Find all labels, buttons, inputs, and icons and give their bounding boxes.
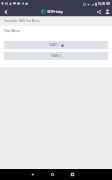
button[interactable]: Navigate up <box>0 7 11 16</box>
staticText: Paramedic PASS Test Menu <box>4 19 40 23</box>
staticText: 10:09 PM <box>98 2 111 6</box>
button[interactable]: Home <box>42 169 62 180</box>
staticText: EXAM 2 <box>51 54 61 58</box>
staticText: 3DPrinty <box>47 9 63 14</box>
button[interactable]: Recent apps <box>62 169 82 180</box>
button[interactable]: EXAM 1 <box>4 41 108 49</box>
button[interactable]: Back <box>22 169 42 180</box>
button[interactable]: Share <box>94 7 103 16</box>
staticText: Test Menu <box>4 28 21 33</box>
button[interactable]: EXAM 2 <box>4 52 108 60</box>
staticText: EXAM 1 <box>49 43 59 47</box>
button[interactable]: Account <box>103 7 112 16</box>
